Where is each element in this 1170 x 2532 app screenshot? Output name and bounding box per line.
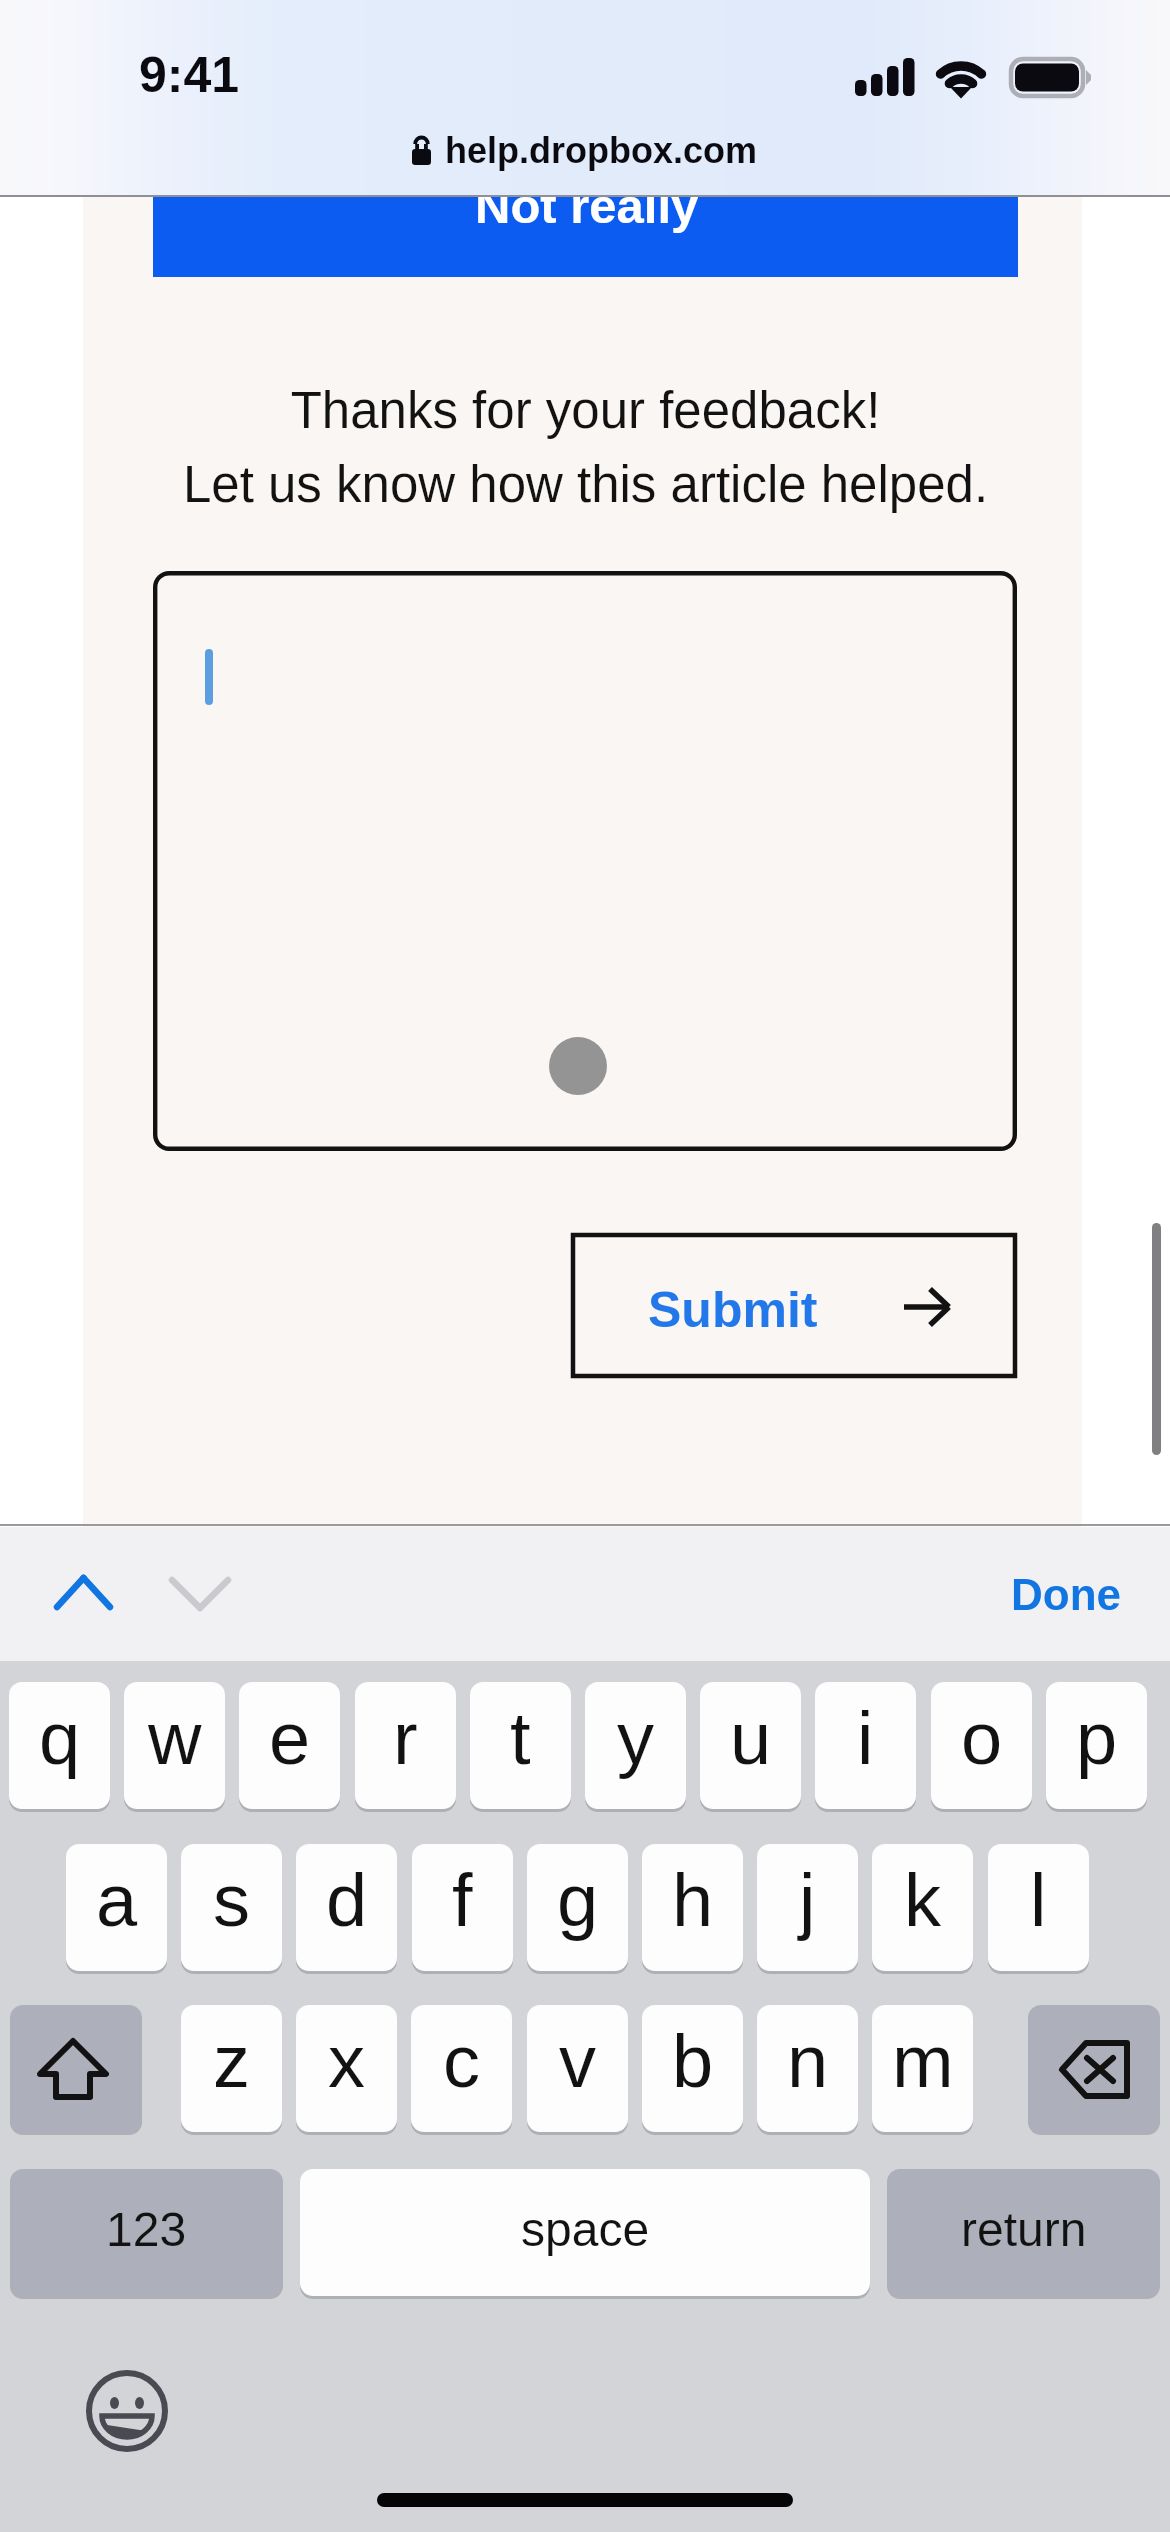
staticText: 9:41 — [139, 47, 240, 103]
button[interactable]: i — [815, 1682, 916, 1809]
staticText: d — [326, 1859, 368, 1942]
button[interactable] — [153, 571, 1017, 1151]
button[interactable]: f — [412, 1844, 513, 1971]
staticText: 123 — [106, 2203, 187, 2257]
button[interactable]: x — [296, 2005, 397, 2132]
button[interactable]: k — [872, 1844, 973, 1971]
staticText: v — [559, 2020, 596, 2103]
button[interactable]: t — [470, 1682, 571, 1809]
staticText: j — [799, 1859, 816, 1942]
button[interactable]: g — [527, 1844, 628, 1971]
button[interactable]: space — [300, 2169, 870, 2296]
staticText: return — [961, 2203, 1087, 2257]
button[interactable]: b — [642, 2005, 743, 2132]
button[interactable]: Shift — [10, 2005, 142, 2132]
button[interactable]: Backspace — [1028, 2005, 1160, 2132]
button[interactable]: j — [757, 1844, 858, 1971]
staticText: t — [510, 1697, 531, 1780]
staticText: y — [617, 1697, 654, 1780]
staticText: w — [148, 1697, 202, 1780]
staticText: Thanks for your feedback! Let us know ho… — [86, 382, 1085, 512]
staticText: Submit — [648, 1282, 818, 1338]
button[interactable]: h — [642, 1844, 743, 1971]
staticText: help.dropbox.com — [445, 130, 758, 170]
staticText: l — [1030, 1859, 1047, 1942]
staticText: s — [213, 1859, 250, 1942]
staticText: Done — [1011, 1570, 1121, 1619]
button[interactable]: y — [585, 1682, 686, 1809]
button[interactable]: c — [411, 2005, 512, 2132]
staticText: x — [328, 2020, 365, 2103]
staticText: Not really — [475, 179, 699, 234]
staticText: m — [892, 2020, 954, 2103]
staticText: r — [393, 1697, 418, 1780]
button[interactable]: e — [239, 1682, 340, 1809]
button[interactable]: Not really — [153, 197, 1018, 277]
staticText: b — [672, 2020, 714, 2103]
button[interactable]: Submit — [571, 1233, 1017, 1378]
button[interactable]: l — [988, 1844, 1089, 1971]
button[interactable]: r — [355, 1682, 456, 1809]
button[interactable]: n — [757, 2005, 858, 2132]
button[interactable]: Next field — [143, 1539, 262, 1649]
staticText: g — [557, 1859, 599, 1942]
button[interactable]: Emoji keyboard — [70, 2354, 184, 2468]
staticText: e — [269, 1697, 311, 1780]
button[interactable]: m — [872, 2005, 973, 2132]
button[interactable]: 123 — [10, 2169, 283, 2296]
staticText: i — [857, 1697, 874, 1780]
button[interactable]: u — [700, 1682, 801, 1809]
staticText: c — [443, 2020, 480, 2103]
button[interactable]: v — [527, 2005, 628, 2132]
button[interactable]: q — [9, 1682, 110, 1809]
button[interactable]: z — [181, 2005, 282, 2132]
button[interactable]: a — [66, 1844, 167, 1971]
button[interactable]: Previous field — [24, 1539, 143, 1649]
staticText: q — [39, 1697, 81, 1780]
staticText: f — [452, 1859, 473, 1942]
staticText: u — [730, 1697, 772, 1780]
staticText: space — [521, 2203, 650, 2257]
button[interactable]: return — [887, 2169, 1160, 2296]
button[interactable]: d — [296, 1844, 397, 1971]
staticText: a — [96, 1859, 138, 1942]
button[interactable]: p — [1046, 1682, 1147, 1809]
staticText: h — [672, 1859, 714, 1942]
button[interactable]: Done — [986, 1543, 1146, 1645]
staticText: z — [213, 2020, 250, 2103]
button[interactable]: w — [124, 1682, 225, 1809]
button[interactable]: s — [181, 1844, 282, 1971]
button[interactable]: o — [931, 1682, 1032, 1809]
staticText: n — [787, 2020, 829, 2103]
staticText: p — [1076, 1697, 1118, 1780]
staticText: o — [961, 1697, 1003, 1780]
staticText: k — [904, 1859, 941, 1942]
